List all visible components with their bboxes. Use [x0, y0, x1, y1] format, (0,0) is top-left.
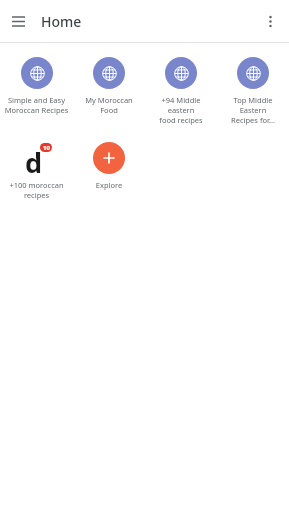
- button[interactable]: Top Middle Eastern Recipes for...: [217, 54, 289, 128]
- staticText: +94 Middle eastern food recipes: [148, 95, 214, 125]
- button[interactable]: Open navigation menu: [3, 6, 33, 36]
- other: +100 moroccan recipes: [21, 142, 53, 174]
- staticText: Explore: [76, 180, 142, 190]
- button[interactable]: My Moroccan Food: [73, 54, 145, 118]
- staticText: d: [25, 144, 43, 176]
- button[interactable]: Simple and Easy Moroccan Recipes: [0, 54, 73, 118]
- button[interactable]: More options: [255, 6, 285, 36]
- other: Explore: [93, 142, 125, 174]
- staticText: My Moroccan Food: [76, 95, 142, 115]
- button[interactable]: +100 moroccan recipes: [0, 139, 73, 203]
- staticText: 10: [43, 144, 50, 152]
- button[interactable]: Explore: [73, 139, 145, 193]
- staticText: +100 moroccan recipes: [3, 180, 70, 200]
- staticText: Simple and Easy Moroccan Recipes: [3, 95, 70, 115]
- staticText: Top Middle Eastern Recipes for...: [220, 95, 286, 125]
- staticText: Home: [41, 12, 82, 31]
- button[interactable]: +94 Middle eastern food recipes: [145, 54, 217, 128]
